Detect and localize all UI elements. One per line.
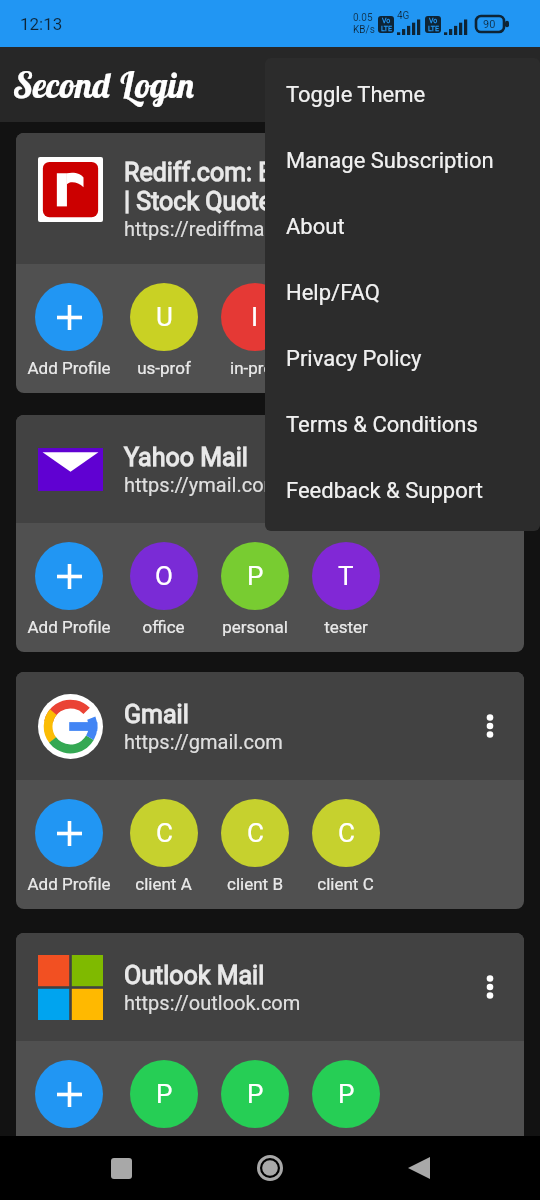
staticText: Second Login xyxy=(14,63,196,107)
button[interactable]: Outlook Mail xyxy=(16,933,524,1170)
button[interactable]: X xyxy=(300,283,391,378)
staticText: P xyxy=(247,1079,264,1109)
button[interactable]: Gmail xyxy=(16,672,524,909)
button[interactable]: C xyxy=(209,799,300,894)
button[interactable]: Help/FAQ xyxy=(265,260,540,326)
button[interactable]: Add Profile xyxy=(20,283,118,378)
staticText: Privacy Policy xyxy=(286,346,422,372)
button[interactable]: Add Profile xyxy=(20,799,118,894)
button[interactable]: C xyxy=(118,799,209,894)
button[interactable]: Add Profile xyxy=(20,542,118,637)
staticText: Add Profile xyxy=(27,358,111,378)
staticText: https://outlook.com xyxy=(124,991,301,1014)
staticText: C xyxy=(247,818,264,848)
staticText: Terms & Conditions xyxy=(286,412,478,438)
button[interactable]: Privacy Policy xyxy=(265,326,540,392)
staticText: p3 xyxy=(336,1135,356,1155)
button[interactable]: O xyxy=(118,542,209,637)
staticText: Manage Subscription xyxy=(286,148,494,174)
staticText: Vo xyxy=(429,17,438,25)
staticText: office xyxy=(142,617,185,637)
staticText: 90 xyxy=(483,18,496,31)
button[interactable]: Recent apps xyxy=(93,1140,149,1196)
staticText: Add Profile xyxy=(27,617,111,637)
staticText: https://rediffmail.com xyxy=(124,217,319,240)
staticText: P xyxy=(156,1079,173,1109)
button[interactable]: Toggle Theme xyxy=(265,62,540,128)
button[interactable]: P xyxy=(209,542,300,637)
staticText: https://ymail.com xyxy=(124,473,282,496)
staticText: https://gmail.com xyxy=(124,730,283,753)
staticText: personal xyxy=(222,617,288,637)
staticText: Feedback & Support xyxy=(286,478,483,504)
button[interactable]: P xyxy=(209,1060,300,1155)
staticText: tester xyxy=(324,617,368,637)
staticText: Vo xyxy=(382,17,391,25)
staticText: LTE xyxy=(381,25,392,33)
staticText: Rediff.com: Business, Election | Stock Q… xyxy=(124,158,470,216)
staticText: 12:13 xyxy=(20,14,63,34)
button[interactable]: More options xyxy=(470,706,510,746)
staticText: I xyxy=(251,302,259,332)
staticText: T xyxy=(338,561,354,591)
staticText: Toggle Theme xyxy=(286,82,426,108)
button[interactable]: Terms & Conditions xyxy=(265,392,540,458)
staticText: Add Profile xyxy=(27,874,111,894)
staticText: LTE xyxy=(428,25,439,33)
button[interactable]: Feedback & Support xyxy=(265,458,540,524)
button[interactable]: About xyxy=(265,194,540,260)
button[interactable]: More options xyxy=(470,449,510,489)
button[interactable]: Home xyxy=(242,1140,298,1196)
staticText: client C xyxy=(317,874,374,894)
staticText: x xyxy=(341,358,350,378)
staticText: us-prof xyxy=(137,358,191,378)
button[interactable]: Rediff.com: Business, Election | Stock Q… xyxy=(16,133,524,393)
button[interactable]: U xyxy=(118,283,209,378)
button[interactable]: P xyxy=(118,1060,209,1155)
button[interactable]: P xyxy=(300,1060,391,1155)
staticText: client A xyxy=(135,874,192,894)
staticText: in-prof xyxy=(230,358,279,378)
button[interactable]: Back xyxy=(391,1140,447,1196)
staticText: P xyxy=(247,561,264,591)
staticText: p2 xyxy=(245,1135,265,1155)
staticText: 4G xyxy=(397,10,410,22)
staticText: Help/FAQ xyxy=(286,280,380,306)
button[interactable]: Yahoo Mail xyxy=(16,415,524,652)
staticText: About xyxy=(286,214,345,240)
button[interactable]: I xyxy=(209,283,300,378)
staticText: U xyxy=(156,302,173,332)
staticText: C xyxy=(338,818,355,848)
staticText: KB/s xyxy=(353,24,375,36)
button[interactable]: More options xyxy=(470,967,510,1007)
staticText: client B xyxy=(227,874,283,894)
staticText: p1 xyxy=(154,1135,174,1155)
staticText: O xyxy=(155,561,173,591)
staticText: Gmail xyxy=(124,700,189,729)
button[interactable]: T xyxy=(300,542,391,637)
staticText: P xyxy=(338,1079,355,1109)
button[interactable]: C xyxy=(300,799,391,894)
staticText: 0.05 xyxy=(353,12,373,24)
button[interactable]: Add Profile xyxy=(20,1060,118,1155)
staticText: Add Profile xyxy=(27,1135,111,1155)
staticText: Yahoo Mail xyxy=(124,443,248,472)
button[interactable]: Manage Subscription xyxy=(265,128,540,194)
staticText: C xyxy=(156,818,173,848)
staticText: Outlook Mail xyxy=(124,961,265,990)
